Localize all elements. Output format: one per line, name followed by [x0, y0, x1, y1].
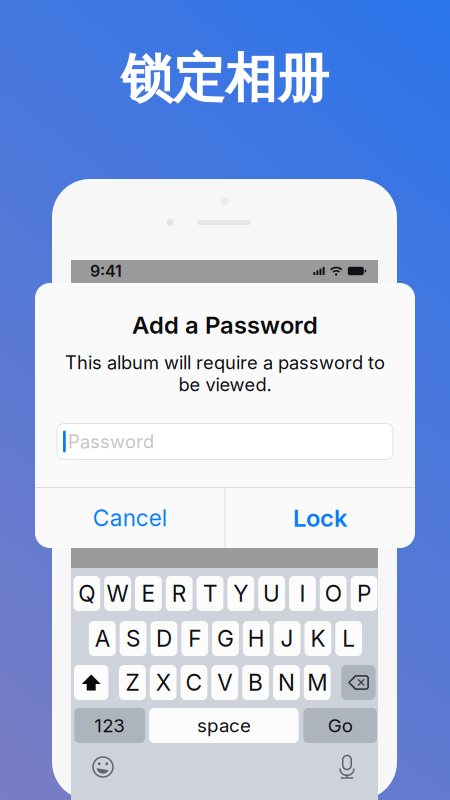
staticText: L — [342, 625, 355, 652]
button[interactable]: Delete — [341, 665, 376, 700]
button[interactable]: W — [104, 576, 131, 611]
staticText: X — [156, 669, 171, 696]
staticText: J — [281, 625, 294, 652]
staticText: Password — [68, 430, 154, 452]
staticText: 锁定相册 — [121, 46, 329, 111]
button[interactable]: H — [243, 621, 270, 656]
button[interactable]: V — [211, 665, 238, 700]
button[interactable]: N — [273, 665, 300, 700]
button[interactable]: R — [166, 576, 193, 611]
button[interactable]: Lock — [225, 488, 415, 548]
button[interactable]: Z — [119, 665, 146, 700]
button[interactable]: Shift — [74, 665, 108, 700]
button[interactable]: D — [150, 621, 177, 656]
button[interactable]: O — [320, 576, 347, 611]
button[interactable]: L — [335, 621, 362, 656]
staticText: G — [217, 625, 234, 652]
staticText: O — [325, 580, 342, 607]
staticText: Go — [328, 714, 353, 737]
staticText: 123 — [94, 714, 125, 737]
staticText: 9:41 — [90, 261, 122, 281]
staticText: U — [263, 580, 280, 607]
staticText: space — [197, 714, 251, 737]
button[interactable]: X — [150, 665, 177, 700]
button[interactable]: F — [181, 621, 208, 656]
staticText: A — [95, 625, 110, 652]
staticText: Cancel — [93, 504, 167, 532]
button[interactable]: T — [197, 576, 223, 611]
staticText: N — [278, 669, 295, 696]
button[interactable]: S — [120, 621, 146, 656]
button[interactable]: M — [304, 665, 331, 700]
staticText: be viewed. — [178, 373, 271, 396]
staticText: S — [126, 625, 140, 652]
staticText: B — [248, 669, 263, 696]
button[interactable]: U — [258, 576, 285, 611]
staticText: Q — [78, 580, 95, 607]
staticText: W — [107, 580, 129, 607]
button[interactable]: Emoji keyboard — [92, 756, 114, 778]
button[interactable]: space — [149, 708, 299, 743]
staticText: D — [156, 625, 172, 652]
button[interactable]: C — [181, 665, 207, 700]
button[interactable]: Cancel — [35, 488, 224, 548]
staticText: This album will require a password to — [65, 351, 385, 374]
button[interactable]: Q — [73, 576, 100, 611]
staticText: H — [248, 625, 265, 652]
button[interactable]: P — [351, 576, 377, 611]
staticText: ✕ — [356, 675, 366, 689]
staticText: V — [217, 669, 232, 696]
staticText: M — [307, 669, 327, 696]
button[interactable]: J — [274, 621, 300, 656]
staticText: E — [141, 580, 155, 607]
staticText: Add a Password — [132, 310, 318, 339]
button[interactable]: 123 — [74, 708, 145, 743]
button[interactable]: K — [304, 621, 331, 656]
button[interactable]: G — [212, 621, 239, 656]
staticText: F — [188, 625, 201, 652]
button[interactable]: E — [135, 576, 162, 611]
button[interactable]: A — [89, 621, 116, 656]
button[interactable]: B — [242, 665, 269, 700]
staticText: T — [203, 580, 217, 607]
staticText: Lock — [293, 503, 347, 532]
staticText: P — [357, 580, 371, 607]
button[interactable]: Go — [303, 708, 377, 743]
button[interactable]: Y — [227, 576, 254, 611]
staticText: I — [299, 580, 305, 607]
staticText: R — [172, 580, 187, 607]
button[interactable]: I — [289, 576, 316, 611]
staticText: Y — [233, 580, 248, 607]
staticText: K — [310, 625, 325, 652]
staticText: Z — [125, 669, 139, 696]
button[interactable]: Dictation — [336, 754, 358, 780]
staticText: C — [185, 669, 202, 696]
